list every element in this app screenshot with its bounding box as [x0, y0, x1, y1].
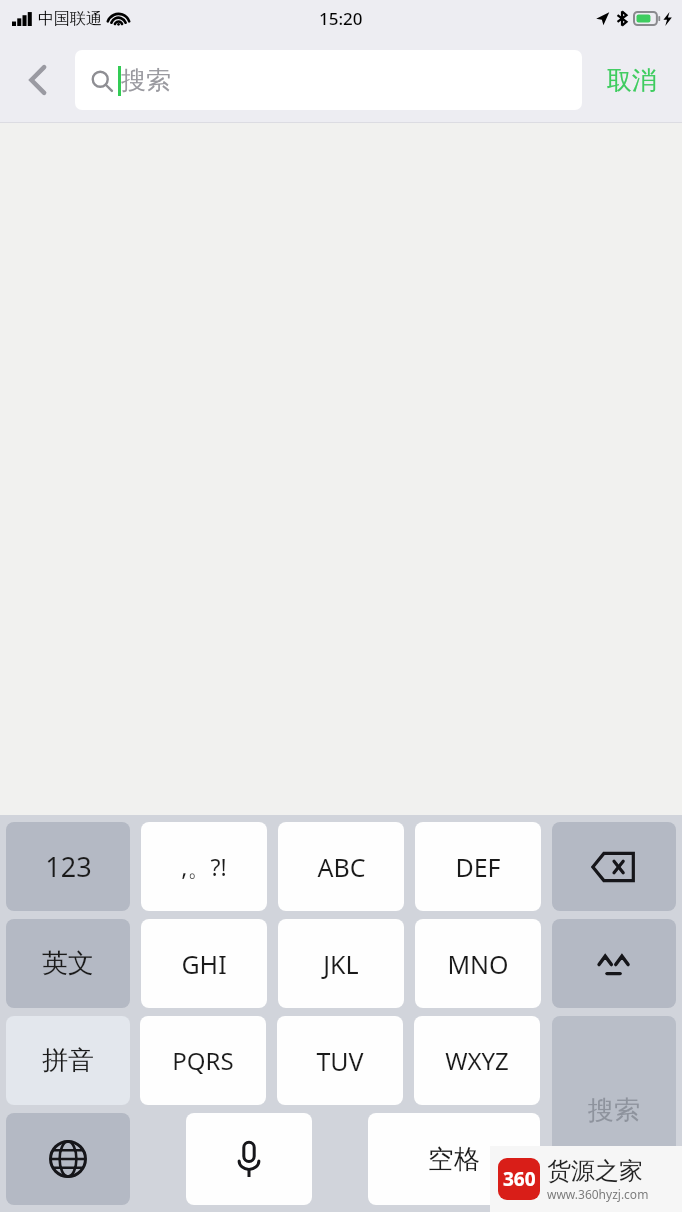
staticText: 空格	[428, 1143, 480, 1176]
button[interactable]: ,。?!	[141, 822, 267, 911]
staticText: TUV	[316, 1044, 364, 1078]
button[interactable]: 搜索	[552, 1016, 676, 1205]
staticText: 中国联通	[38, 9, 102, 29]
staticText: ,。?!	[181, 851, 227, 882]
button[interactable]: TUV	[277, 1016, 403, 1105]
button[interactable]: 空格	[368, 1113, 540, 1205]
staticText: 英文	[42, 947, 94, 980]
staticText: 360	[503, 1166, 536, 1192]
button[interactable]: 123	[6, 822, 130, 911]
button[interactable]: 英文	[6, 919, 130, 1008]
button[interactable]: Voice input	[186, 1113, 312, 1205]
staticText: www.360hyzj.com	[547, 1186, 649, 1202]
staticText: PQRS	[172, 1044, 234, 1077]
staticText: WXYZ	[445, 1044, 509, 1077]
staticText: 拼音	[42, 1044, 94, 1077]
button[interactable]: Back	[0, 37, 75, 123]
staticText: 取消	[607, 65, 657, 96]
staticText: 货源之家	[547, 1156, 643, 1186]
staticText: 15:20	[319, 7, 363, 30]
staticText: GHI	[181, 947, 227, 981]
button[interactable]: 搜索	[75, 50, 582, 110]
staticText: ABC	[317, 850, 366, 884]
button[interactable]: ABC	[278, 822, 404, 911]
staticText: MNO	[447, 947, 509, 981]
button[interactable]: 拼音	[6, 1016, 130, 1105]
button[interactable]: PQRS	[140, 1016, 266, 1105]
button[interactable]: 取消	[582, 37, 682, 123]
button[interactable]: Emoticon	[552, 919, 676, 1008]
staticText: 搜索	[121, 65, 171, 96]
button[interactable]: WXYZ	[414, 1016, 540, 1105]
button[interactable]: Backspace	[552, 822, 676, 911]
button[interactable]: GHI	[141, 919, 267, 1008]
staticText: JKL	[323, 947, 359, 981]
button[interactable]: Switch language	[6, 1113, 130, 1205]
staticText: 123	[45, 848, 92, 885]
button[interactable]: MNO	[415, 919, 541, 1008]
button[interactable]: JKL	[278, 919, 404, 1008]
staticText: 搜索	[588, 1094, 640, 1127]
staticText: DEF	[455, 850, 501, 884]
button[interactable]: DEF	[415, 822, 541, 911]
